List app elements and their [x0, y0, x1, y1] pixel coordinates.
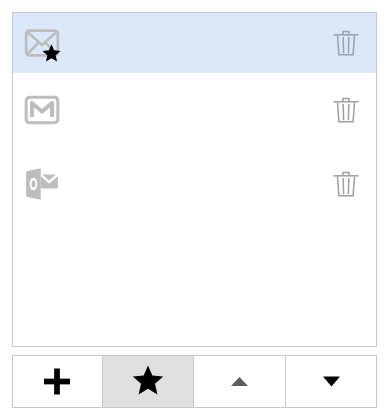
button[interactable]: Delete Default mail [324, 21, 368, 65]
button[interactable]: Add account [12, 355, 102, 408]
button[interactable]: Move up [194, 355, 285, 408]
button[interactable]: Delete Default mail [12, 12, 377, 73]
button[interactable]: Delete Outlook [324, 162, 368, 206]
button[interactable]: Delete Gmail [12, 73, 377, 147]
button[interactable]: Move down [286, 355, 377, 408]
button[interactable]: Set as default [103, 355, 193, 408]
button[interactable]: Delete Outlook [12, 147, 377, 221]
button[interactable]: Delete Gmail [324, 88, 368, 132]
